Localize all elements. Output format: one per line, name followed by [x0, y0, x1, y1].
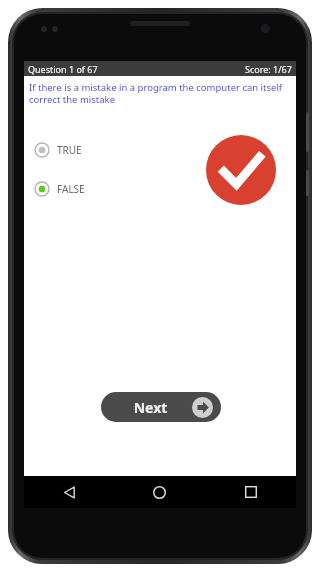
button[interactable]: Next — [101, 392, 221, 422]
staticText: Score: 1/67 — [245, 63, 292, 75]
button[interactable]: TRUE — [32, 139, 82, 161]
button[interactable]: Recent apps — [205, 476, 296, 508]
staticText: Next — [109, 398, 192, 417]
staticText: TRUE — [57, 143, 82, 157]
button[interactable]: FALSE — [32, 178, 85, 200]
staticText: Question 1 of 67 — [28, 63, 98, 75]
staticText: FALSE — [57, 182, 85, 196]
button[interactable]: Back — [24, 476, 114, 508]
staticText: If there is a mistake in a program the c… — [29, 81, 287, 106]
button[interactable]: Home — [114, 476, 205, 508]
